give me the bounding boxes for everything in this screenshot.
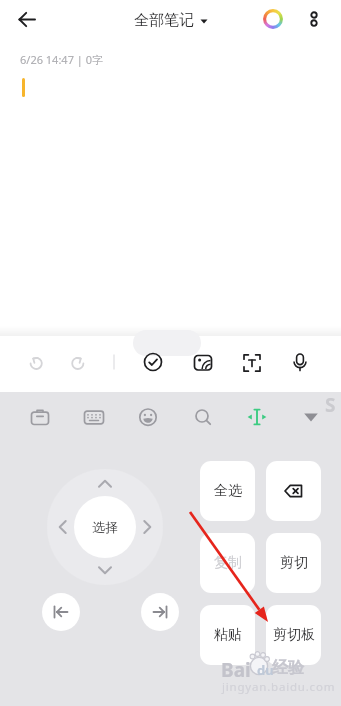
button[interactable] xyxy=(64,348,92,376)
button[interactable] xyxy=(26,403,54,431)
button[interactable] xyxy=(12,5,42,35)
staticText: 粘贴 xyxy=(214,626,242,644)
button[interactable] xyxy=(22,348,50,376)
staticText: S xyxy=(325,392,336,418)
staticText: 6/26 14:47 | 0字 xyxy=(20,52,104,67)
staticText: 剪切板 xyxy=(273,626,315,644)
button[interactable] xyxy=(80,403,108,431)
staticText: 全选 xyxy=(214,482,242,500)
staticText: 剪切 xyxy=(280,554,308,572)
button[interactable] xyxy=(134,403,162,431)
button[interactable] xyxy=(243,403,271,431)
button[interactable]: 剪切板 xyxy=(266,605,321,665)
button[interactable] xyxy=(42,593,80,631)
staticText: 复制 xyxy=(214,554,242,572)
button[interactable] xyxy=(297,403,325,431)
button[interactable]: 粘贴 xyxy=(200,605,255,665)
button[interactable]: 全部笔记 xyxy=(134,11,208,30)
button[interactable] xyxy=(266,461,321,521)
button[interactable] xyxy=(139,348,167,376)
staticText: jingyan.baidu.com xyxy=(222,679,336,695)
button[interactable] xyxy=(286,348,314,376)
button[interactable] xyxy=(95,560,115,580)
button[interactable] xyxy=(238,348,266,376)
button[interactable]: 剪切 xyxy=(266,533,321,593)
staticText: 全部笔记 xyxy=(134,11,194,30)
button[interactable]: 选择 xyxy=(74,496,136,558)
staticText: Bai xyxy=(221,657,251,683)
staticText: du xyxy=(257,661,274,679)
button[interactable]: 复制 xyxy=(200,533,255,593)
button[interactable] xyxy=(137,517,157,537)
button[interactable] xyxy=(53,517,73,537)
button[interactable] xyxy=(141,593,179,631)
button[interactable]: 全选 xyxy=(200,461,255,521)
staticText: 经验 xyxy=(272,658,304,678)
button[interactable] xyxy=(259,5,287,33)
button[interactable] xyxy=(300,5,328,33)
button[interactable] xyxy=(189,348,217,376)
button[interactable] xyxy=(189,403,217,431)
staticText: 选择 xyxy=(92,519,118,535)
button[interactable] xyxy=(95,474,115,494)
